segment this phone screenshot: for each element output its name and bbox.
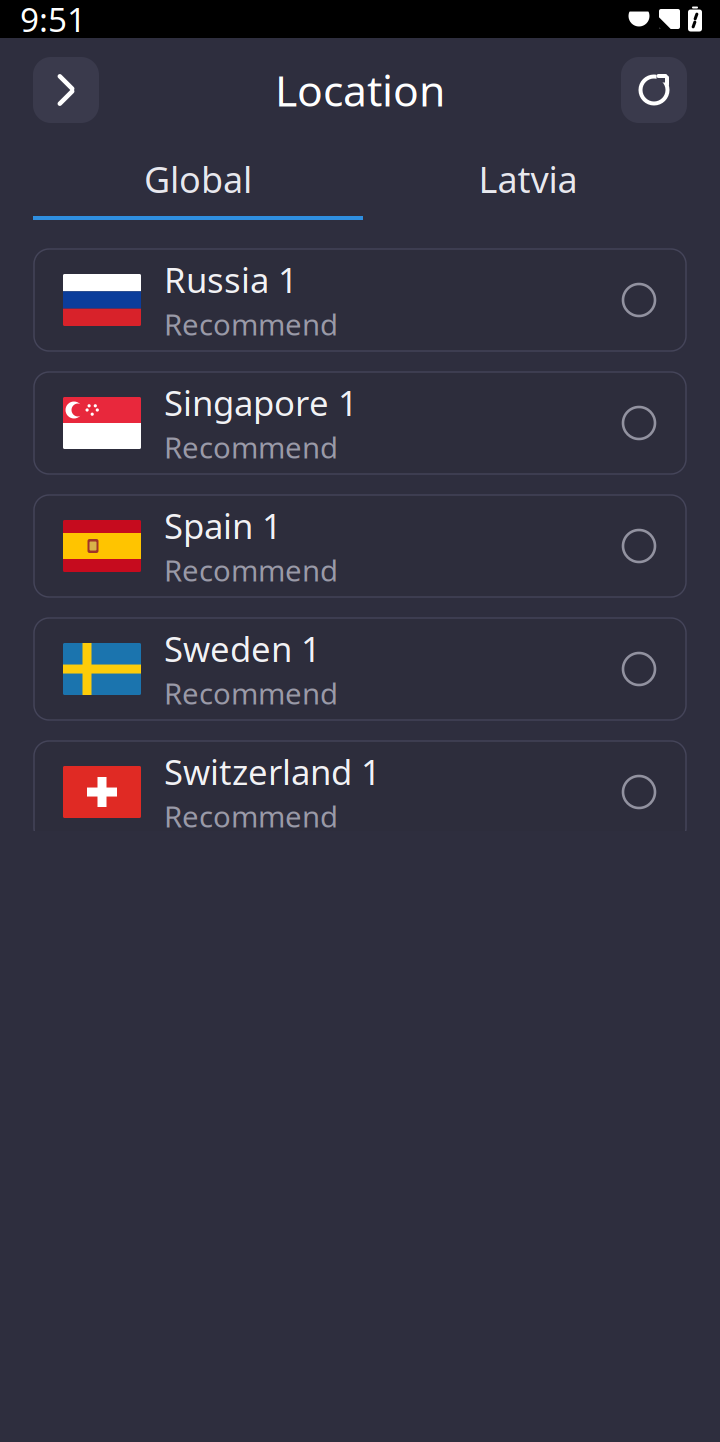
- staticText: Russia 1: [164, 256, 298, 302]
- button[interactable]: Spain 1: [34, 495, 686, 597]
- button[interactable]: Latvia: [363, 142, 693, 220]
- staticText: Recommend: [164, 673, 338, 712]
- staticText: Switzerland 1: [164, 748, 381, 794]
- button[interactable]: Back: [33, 57, 99, 123]
- staticText: Recommend: [164, 796, 338, 835]
- button[interactable]: Refresh: [621, 57, 687, 123]
- button[interactable]: Singapore 1: [34, 372, 686, 474]
- button[interactable]: Switzerland 1: [34, 741, 686, 843]
- staticText: Recommend: [164, 427, 338, 466]
- button[interactable]: Russia 1: [34, 249, 686, 351]
- staticText: Sweden 1: [164, 625, 321, 671]
- staticText: Singapore 1: [164, 379, 358, 425]
- button[interactable]: Sweden 1: [34, 618, 686, 720]
- staticText: Recommend: [164, 550, 338, 589]
- staticText: Global: [144, 155, 252, 203]
- staticText: 9:51: [20, 0, 86, 41]
- staticText: Location: [275, 62, 445, 118]
- button[interactable]: Global: [33, 142, 363, 220]
- staticText: Latvia: [478, 155, 577, 203]
- staticText: Recommend: [164, 304, 338, 343]
- staticText: Spain 1: [164, 502, 282, 548]
